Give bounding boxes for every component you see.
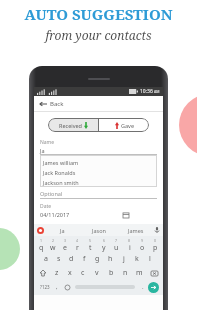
button[interactable]: c xyxy=(76,266,90,280)
button[interactable]: 7 xyxy=(110,238,123,252)
button[interactable]: Jason xyxy=(80,224,117,236)
staticText: Name xyxy=(40,139,55,146)
staticText: 9 xyxy=(141,238,144,243)
staticText: a xyxy=(44,254,48,264)
staticText: u xyxy=(114,243,119,252)
staticText: Date xyxy=(40,203,52,210)
button[interactable]: Back xyxy=(34,96,163,111)
button[interactable]: v xyxy=(90,266,104,280)
button[interactable]: 9 xyxy=(136,238,149,252)
button[interactable]: 0 xyxy=(149,238,162,252)
staticText: Jack Ronalds xyxy=(43,169,76,176)
staticText: q xyxy=(39,243,44,252)
staticText: n xyxy=(123,268,128,278)
button[interactable]: Jack Ronalds xyxy=(43,167,157,177)
staticText: 7 xyxy=(115,238,118,243)
staticText: w xyxy=(50,243,56,252)
staticText: Gave xyxy=(121,122,134,129)
staticText: 5 xyxy=(89,238,92,243)
staticText: m xyxy=(136,268,143,278)
button[interactable]: James william xyxy=(43,157,157,167)
button[interactable]: f xyxy=(78,252,91,266)
staticText: c xyxy=(81,268,85,278)
button[interactable]: b xyxy=(104,266,118,280)
button[interactable]: m xyxy=(132,266,146,280)
button[interactable]: Shift xyxy=(35,266,50,280)
staticText: 10:36 xyxy=(140,88,153,95)
other: Google xyxy=(37,227,44,234)
button[interactable]: g xyxy=(91,252,104,266)
staticText: 04/11/2017 xyxy=(40,211,70,218)
staticText: Ja xyxy=(60,227,65,234)
button[interactable]: 8 xyxy=(123,238,136,252)
button[interactable]: 3 xyxy=(59,238,71,252)
staticText: 1 xyxy=(40,238,43,243)
staticText: i xyxy=(129,243,131,252)
staticText: g xyxy=(95,254,100,264)
staticText: ?123 xyxy=(40,284,50,290)
button[interactable]: Jackson smith xyxy=(43,177,157,187)
staticText: Received xyxy=(59,122,82,129)
staticText: k xyxy=(135,254,139,264)
button[interactable]: Emoji xyxy=(62,280,72,294)
staticText: 2 xyxy=(52,238,55,243)
staticText: James william xyxy=(43,159,79,166)
staticText: d xyxy=(69,254,74,264)
button[interactable]: Ja xyxy=(44,224,80,236)
staticText: j xyxy=(123,254,125,264)
button[interactable]: 2 xyxy=(47,238,59,252)
button[interactable]: James xyxy=(117,224,154,236)
staticText: h xyxy=(108,254,113,264)
staticText: v xyxy=(95,268,99,278)
button[interactable]: d xyxy=(65,252,78,266)
staticText: James xyxy=(128,227,144,234)
button[interactable]: Backspace xyxy=(146,266,162,280)
button[interactable]: k xyxy=(130,252,143,266)
staticText: p xyxy=(153,243,158,252)
staticText: s xyxy=(57,254,61,264)
button[interactable]: x xyxy=(63,266,76,280)
staticText: 6 xyxy=(103,238,106,243)
staticText: Optional xyxy=(40,190,63,197)
button[interactable]: 4 xyxy=(71,238,84,252)
staticText: l xyxy=(149,254,151,264)
staticText: t xyxy=(89,243,92,252)
button[interactable]: l xyxy=(143,252,156,266)
staticText: r xyxy=(76,243,79,252)
staticText: AM xyxy=(153,89,160,94)
button[interactable]: a xyxy=(40,252,52,266)
staticText: Ja xyxy=(40,147,45,154)
button[interactable]: h xyxy=(104,252,117,266)
staticText: 0 xyxy=(154,238,157,243)
staticText: e xyxy=(63,243,67,252)
staticText: z xyxy=(55,268,59,278)
button[interactable]: ?123 xyxy=(38,280,52,294)
staticText: Back xyxy=(50,100,64,108)
staticText: from your contacts xyxy=(45,27,152,43)
button[interactable]: 6 xyxy=(97,238,110,252)
staticText: 3 xyxy=(64,238,67,243)
button[interactable]: . xyxy=(138,280,148,294)
button[interactable]: Gave xyxy=(99,118,149,132)
button[interactable]: Received xyxy=(48,118,98,132)
staticText: y xyxy=(102,243,106,252)
staticText: Jackson smith xyxy=(43,179,79,186)
button[interactable]: s xyxy=(52,252,65,266)
staticText: . xyxy=(142,283,144,291)
other: Back xyxy=(39,100,47,108)
button[interactable]: n xyxy=(118,266,132,280)
staticText: AUTO SUGGESTION xyxy=(24,4,173,24)
button[interactable]: j xyxy=(117,252,130,266)
staticText: b xyxy=(109,268,114,278)
button[interactable]: 5 xyxy=(84,238,97,252)
staticText: 4 xyxy=(76,238,79,243)
button[interactable]: , xyxy=(52,280,62,294)
button[interactable]: Send xyxy=(148,282,159,293)
staticText: 8 xyxy=(128,238,131,243)
staticText: x xyxy=(68,268,72,278)
button[interactable]: z xyxy=(50,266,63,280)
button[interactable]: 1 xyxy=(35,238,47,252)
button[interactable]: Pick date xyxy=(123,212,129,218)
staticText: Jason xyxy=(92,227,106,234)
